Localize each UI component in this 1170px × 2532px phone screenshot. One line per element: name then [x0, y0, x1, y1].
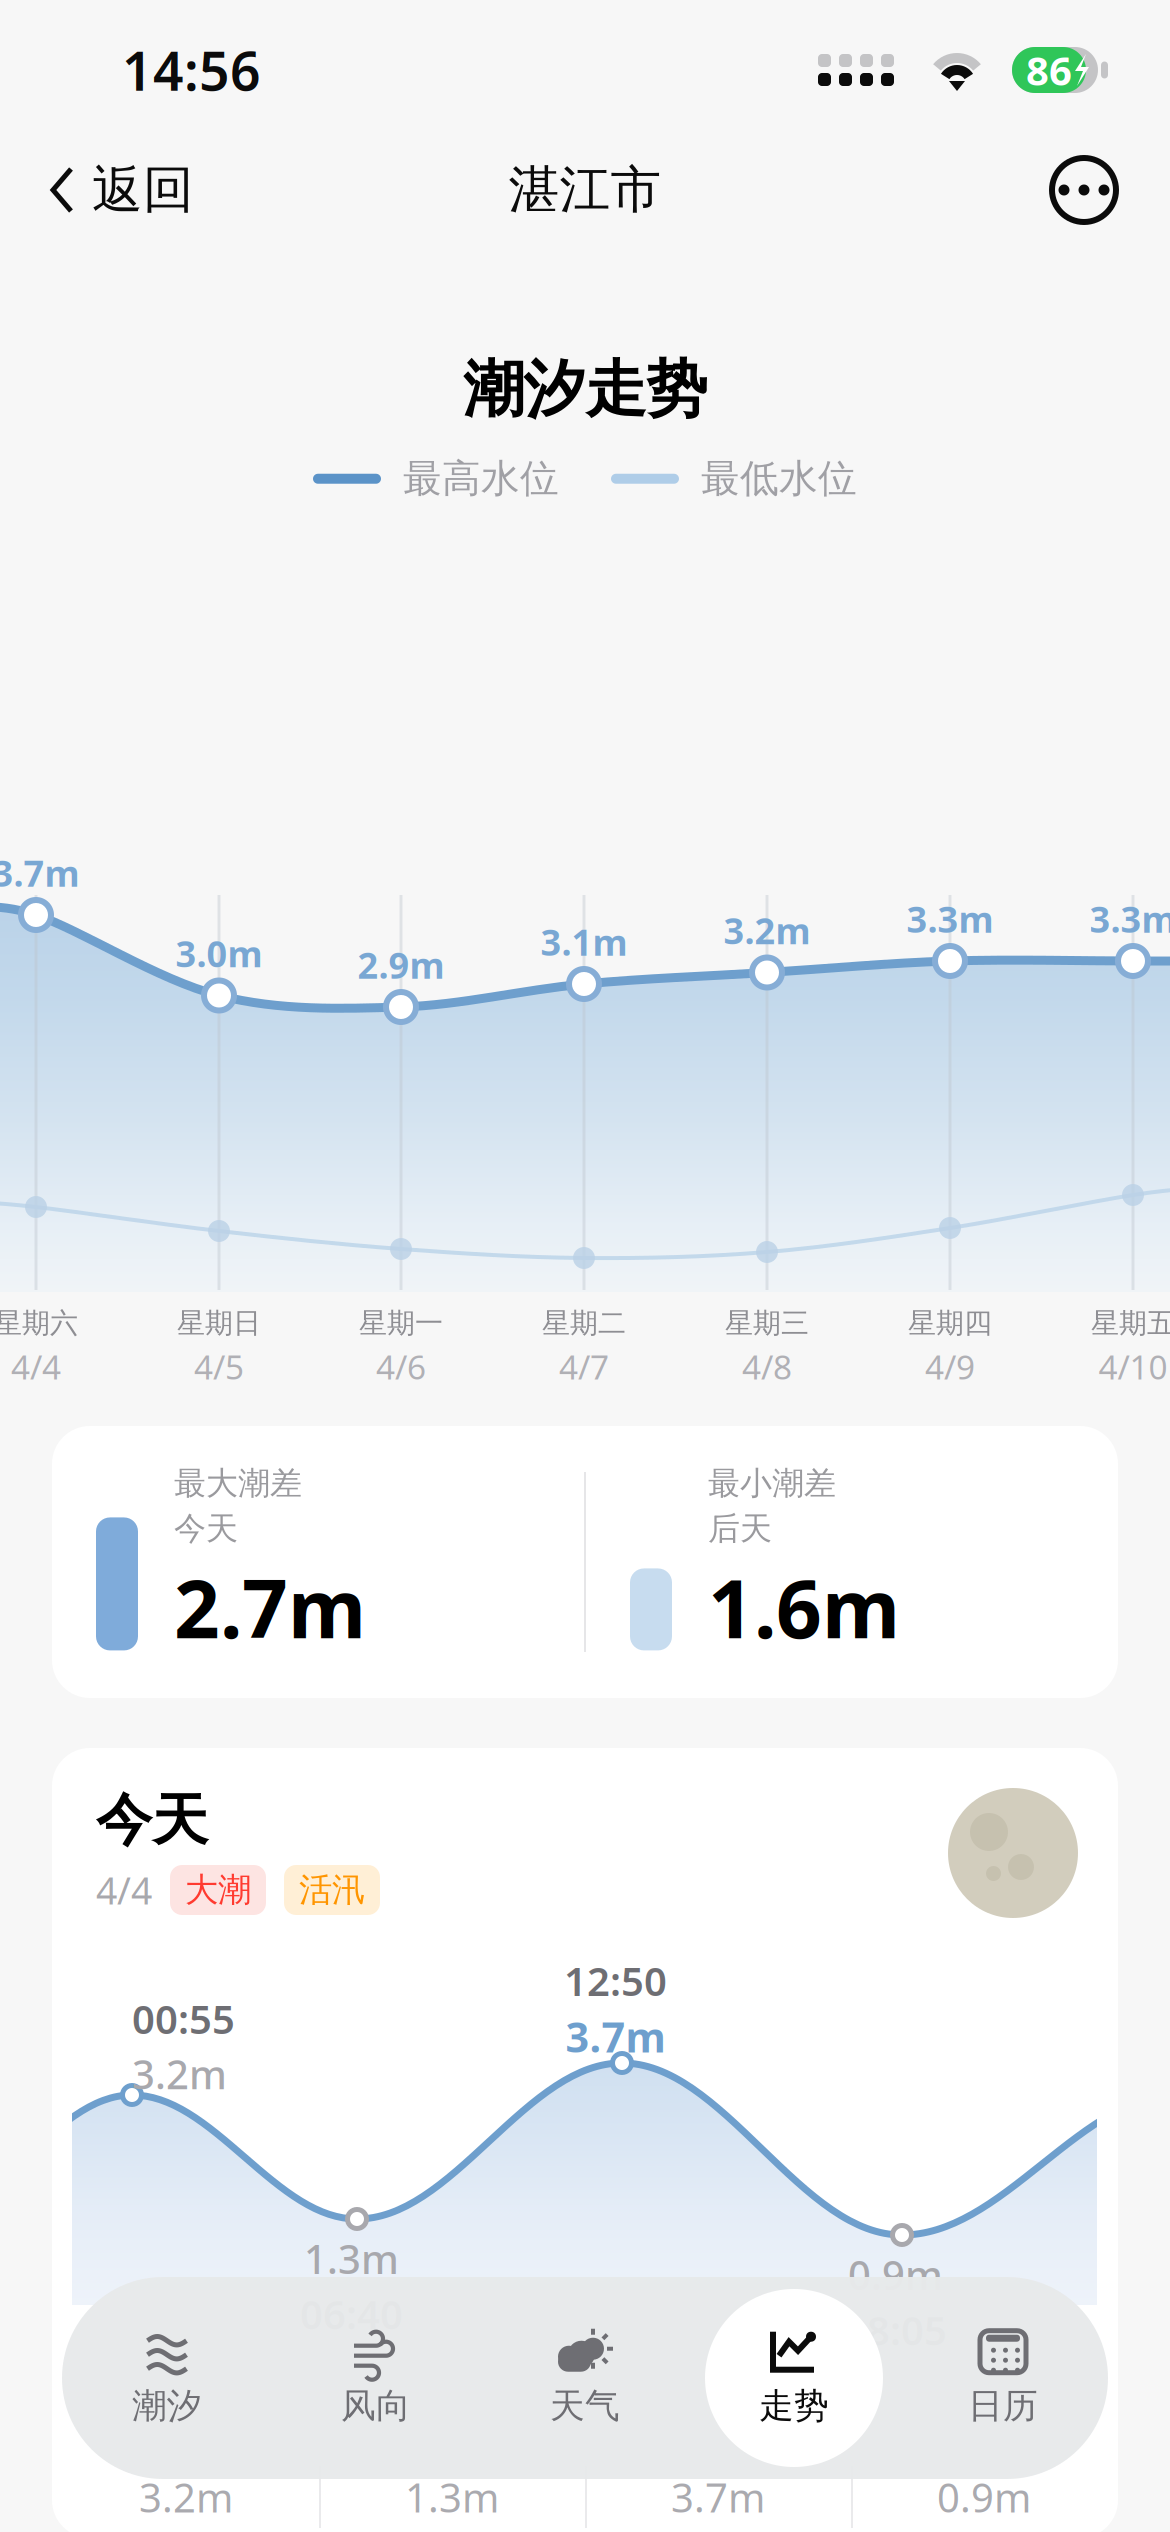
staticText: 4/8 [742, 1344, 792, 1389]
staticText: 湛江市 [508, 159, 661, 221]
staticText: 星期一 [359, 1306, 443, 1340]
staticText: 3.7m [565, 2009, 665, 2064]
staticText: 3.0m [175, 929, 262, 977]
staticText: 4/7 [559, 1344, 609, 1389]
staticText: 12:50 [564, 1954, 667, 2007]
staticText: 最高水位 [403, 455, 559, 502]
staticText: 活汛 [299, 1869, 365, 1910]
staticText: 2.9m [357, 941, 444, 989]
staticText: 4/6 [376, 1344, 426, 1389]
staticText: 4/9 [925, 1344, 975, 1389]
staticText: 风向 [341, 2385, 411, 2427]
staticText: 返回 [92, 159, 194, 221]
staticText: 日历 [968, 2385, 1038, 2427]
staticText: 3.7m [0, 849, 79, 897]
staticText: 最大潮差 [174, 1464, 302, 1503]
staticText: 00:55 [132, 1992, 235, 2045]
staticText: 星期二 [542, 1306, 626, 1340]
staticText: 3.2m [132, 2047, 227, 2100]
staticText: 1.3m [304, 2232, 399, 2285]
button[interactable]: 天气 [480, 2277, 689, 2479]
staticText: 4/4 [11, 1344, 61, 1389]
staticText: 潮汐走势 [463, 352, 707, 427]
staticText: 86 [1026, 43, 1072, 96]
staticText: 1.6m [708, 1554, 900, 1660]
staticText: 天气 [550, 2385, 620, 2427]
button[interactable]: More options [1034, 140, 1134, 240]
staticText: 06:40 [300, 2287, 403, 2340]
staticText: 潮汐 [132, 2385, 202, 2427]
staticText: 0.9m [848, 2248, 943, 2301]
staticText: 3.2m [139, 2470, 233, 2523]
staticText: 3.2m [723, 906, 810, 954]
staticText: 1.3m [405, 2470, 499, 2523]
staticText: 今天 [174, 1509, 238, 1548]
staticText: 0.9m [937, 2470, 1031, 2523]
staticText: 最低水位 [701, 455, 857, 502]
staticText: 3.3m [1089, 895, 1170, 943]
staticText: 后天 [708, 1509, 772, 1548]
staticText: 星期六 [0, 1306, 78, 1340]
staticText: 最小潮差 [708, 1464, 836, 1503]
staticText: 3.1m [540, 918, 627, 966]
staticText: 大潮 [185, 1869, 251, 1910]
staticText: 星期日 [177, 1306, 261, 1340]
staticText: 星期三 [725, 1306, 809, 1340]
staticText: 3.7m [671, 2470, 765, 2523]
staticText: 18:05 [844, 2303, 947, 2356]
staticText: 走势 [759, 2385, 829, 2427]
staticText: 4/5 [194, 1344, 244, 1389]
staticText: 14:56 [122, 35, 261, 105]
button[interactable]: 走势 [689, 2277, 898, 2479]
staticText: 星期四 [908, 1306, 992, 1340]
button[interactable]: 风向 [271, 2277, 480, 2479]
staticText: 4/4 [96, 1865, 152, 1915]
staticText: 4/10 [1098, 1344, 1167, 1389]
button[interactable]: 返回 [36, 140, 206, 240]
button[interactable]: 日历 [898, 2277, 1107, 2479]
button[interactable]: 潮汐 [62, 2277, 271, 2479]
staticText: 2.7m [174, 1554, 366, 1660]
staticText: 星期五 [1091, 1306, 1170, 1340]
staticText: 3.3m [906, 895, 993, 943]
staticText: 今天 [96, 1786, 208, 1855]
